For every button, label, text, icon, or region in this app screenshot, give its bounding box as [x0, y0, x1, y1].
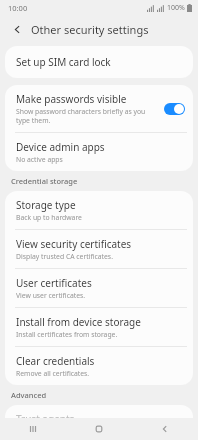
staticText: Trust agents	[16, 412, 75, 426]
staticText: Remove all certificates.	[16, 369, 90, 378]
button[interactable]: View security certificates	[5, 230, 193, 268]
button[interactable]: Home	[66, 418, 132, 440]
staticText: Back up to hardware	[16, 213, 82, 222]
staticText: Device admin apps	[16, 140, 105, 154]
staticText: View security certificates	[16, 237, 132, 251]
staticText: Clear credentials	[16, 354, 95, 368]
staticText: No active apps	[16, 155, 63, 164]
staticText: 10:00	[8, 3, 28, 13]
button[interactable]: User certificates	[5, 269, 193, 307]
button[interactable]: Clear credentials	[5, 347, 193, 385]
staticText: Credential storage	[11, 176, 78, 186]
button[interactable]: Recent apps	[0, 418, 66, 440]
button[interactable]: Make passwords visible	[5, 85, 193, 132]
staticText: Set up SIM card lock	[16, 55, 111, 69]
button[interactable]: Back	[8, 20, 26, 38]
staticText: Other security settings	[31, 22, 149, 37]
button[interactable]: Back	[132, 418, 198, 440]
button[interactable]: Install from device storage	[5, 308, 193, 346]
button[interactable]: Make passwords visible toggle	[164, 103, 185, 115]
staticText: View user certificates.	[16, 291, 86, 300]
staticText: 100%	[167, 3, 185, 13]
button[interactable]: Device admin apps	[5, 133, 193, 171]
staticText: Make passwords visible	[16, 92, 127, 106]
staticText: User certificates	[16, 276, 92, 290]
button[interactable]: Storage type	[5, 191, 193, 229]
staticText: Storage type	[16, 198, 76, 212]
staticText: Show password characters briefly as you …	[16, 107, 158, 125]
staticText: Set screen lock type to use.	[16, 427, 103, 433]
staticText: Install certificates from storage.	[16, 330, 118, 339]
button[interactable]: Set up SIM card lock	[5, 46, 193, 78]
staticText: Advanced	[11, 390, 47, 400]
staticText: Install from device storage	[16, 315, 141, 329]
staticText: Display trusted CA certificates.	[16, 252, 113, 261]
button[interactable]: Trust agents	[5, 405, 193, 440]
